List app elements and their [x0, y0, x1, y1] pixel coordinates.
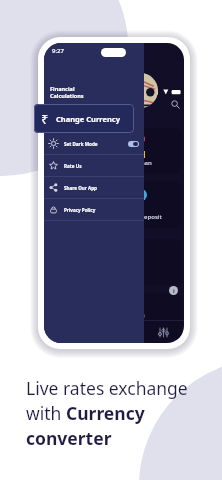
button[interactable]: Privacy Policy: [44, 199, 144, 220]
button[interactable]: Recurring Deposit: [52, 182, 182, 228]
button[interactable]: Savings: [52, 294, 182, 340]
button[interactable]: Info: [169, 286, 178, 295]
staticText: Compare Loan: [110, 159, 152, 167]
staticText: Set Dark Mode: [64, 141, 98, 147]
staticText: 9:27: [52, 47, 64, 55]
button[interactable]: Tools: [154, 323, 172, 341]
staticText: Share Our App: [64, 185, 98, 191]
staticText: Change Currency: [56, 114, 120, 124]
staticText: Live rates exchange with Currency conver…: [26, 376, 188, 450]
staticText: ₹: [41, 110, 49, 128]
button[interactable]: Search: [168, 97, 183, 112]
button[interactable]: ₹: [34, 104, 134, 133]
button[interactable]: Set Dark Mode: [44, 133, 144, 154]
button[interactable]: Rate Us: [44, 155, 144, 176]
button[interactable]: Compare Loan: [52, 128, 182, 174]
staticText: Recurring Deposit: [110, 213, 162, 221]
staticText: Privacy Policy: [64, 207, 96, 213]
staticText: Rate Us: [64, 163, 82, 169]
staticText: Financial Calculations: [50, 85, 84, 99]
staticText: i: [173, 287, 175, 295]
button[interactable]: Share Our App: [44, 177, 144, 198]
button[interactable]: Deposit R...: [52, 239, 182, 285]
button[interactable]: Dark mode toggle: [128, 141, 139, 147]
